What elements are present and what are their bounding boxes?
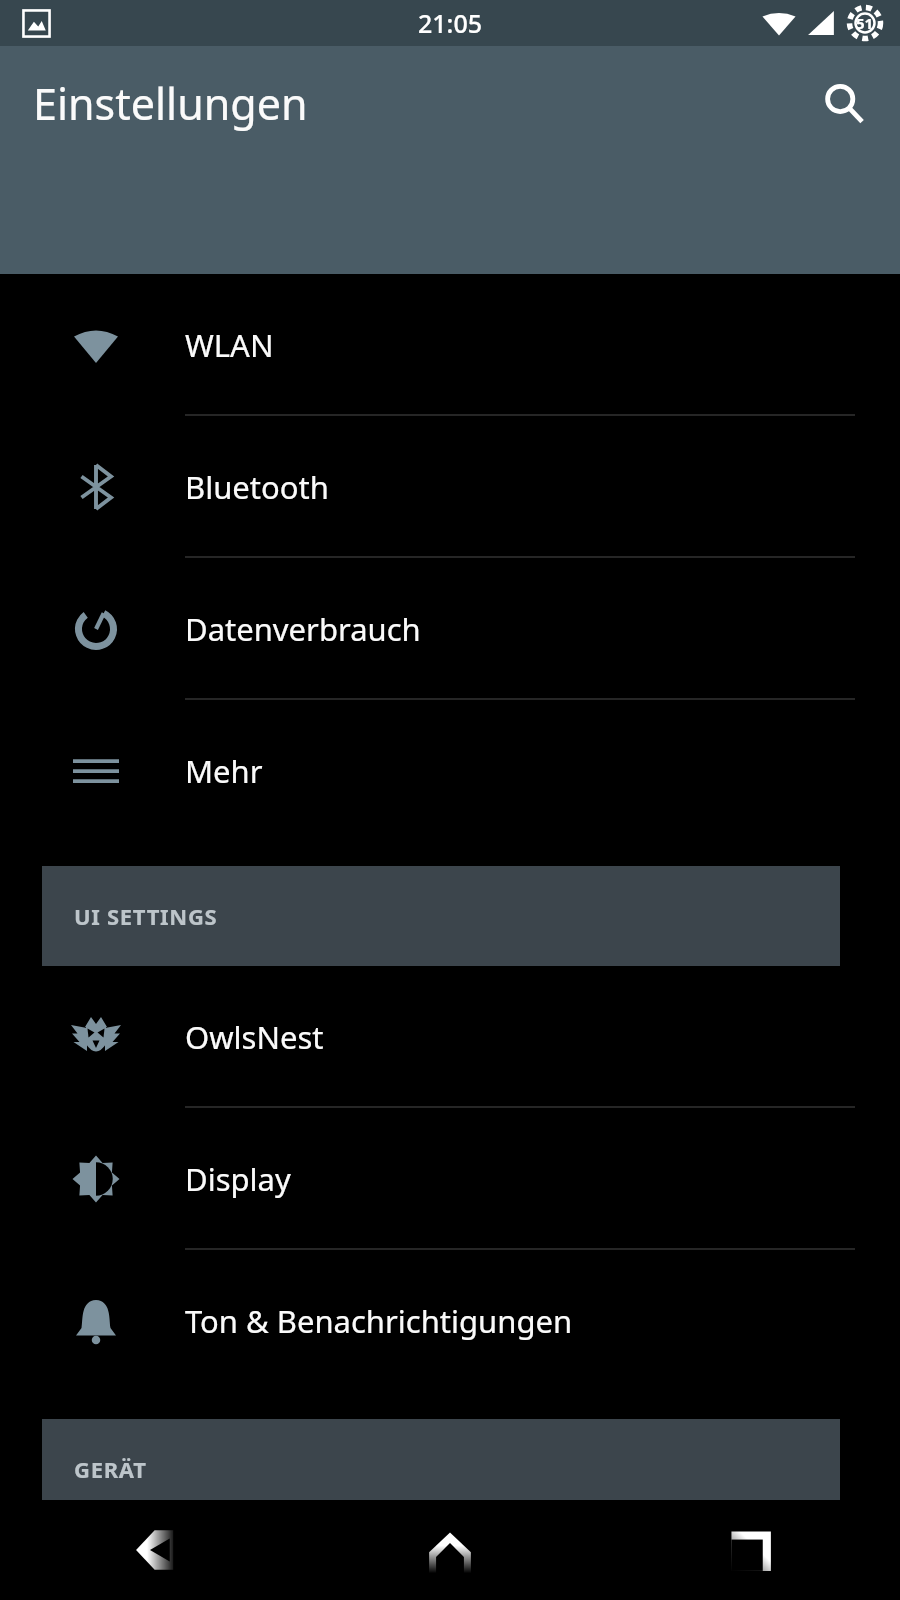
- button[interactable]: OwlsNest: [0, 966, 900, 1108]
- button[interactable]: Mehr: [0, 700, 900, 842]
- staticText: UI SETTINGS: [74, 901, 218, 931]
- staticText: Einstellungen: [33, 74, 308, 133]
- button[interactable]: Suchen: [808, 68, 880, 140]
- staticText: Datenverbrauch: [185, 608, 421, 650]
- button[interactable]: Display: [0, 1108, 900, 1250]
- button[interactable]: Ton & Benachrichtigungen: [0, 1250, 900, 1392]
- staticText: 21:05: [418, 6, 483, 40]
- button[interactable]: Übersicht: [600, 1500, 900, 1600]
- staticText: OwlsNest: [185, 1016, 324, 1058]
- staticText: Ton & Benachrichtigungen: [185, 1300, 573, 1342]
- staticText: WLAN: [185, 324, 274, 366]
- staticText: Mehr: [185, 750, 263, 792]
- button[interactable]: Startseite: [300, 1500, 600, 1600]
- button[interactable]: Bluetooth: [0, 416, 900, 558]
- staticText: Bluetooth: [185, 466, 329, 508]
- button[interactable]: Zurück: [0, 1500, 300, 1600]
- staticText: GERÄT: [74, 1454, 147, 1484]
- button[interactable]: Datenverbrauch: [0, 558, 900, 700]
- button[interactable]: WLAN: [0, 274, 900, 416]
- staticText: 51: [856, 13, 874, 33]
- staticText: Display: [185, 1158, 291, 1200]
